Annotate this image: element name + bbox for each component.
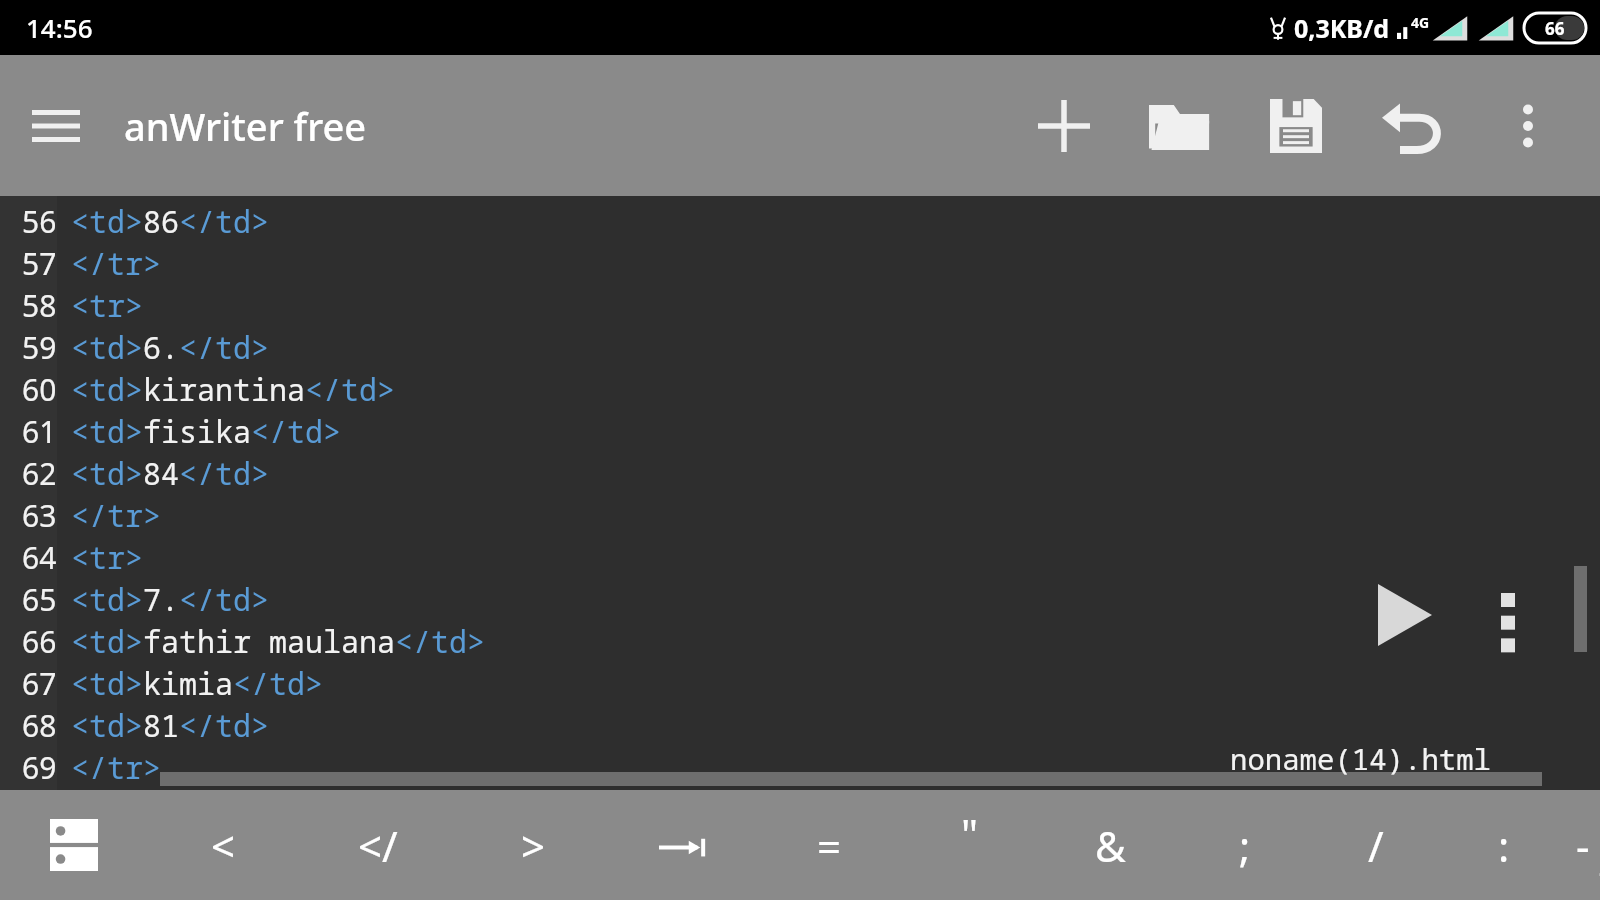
button[interactable]: Undo [1354, 55, 1470, 196]
staticText: 0,3KB/d [1294, 11, 1390, 45]
staticText: 56 [22, 201, 57, 242]
button[interactable]: Open file [1122, 55, 1238, 196]
staticText: 57 [22, 243, 57, 284]
button[interactable]: ; [1180, 790, 1310, 900]
staticText: <td>7.</td> [71, 579, 269, 620]
button[interactable]: Open navigation drawer [20, 90, 92, 162]
staticText: <td>86</td> [71, 201, 269, 242]
staticText: 59 [22, 327, 57, 368]
staticText: 64 [22, 537, 57, 578]
staticText: > [521, 817, 546, 874]
staticText: 58 [22, 285, 57, 326]
staticText: </tr> [71, 495, 161, 536]
button[interactable]: < [148, 790, 298, 900]
staticText: noname(14).html [1230, 739, 1492, 778]
staticText: </tr> [71, 747, 161, 788]
staticText: <td>fathir maulana</td> [71, 621, 485, 662]
staticText: <tr> [71, 285, 143, 326]
staticText: </tr> [71, 243, 161, 284]
staticText: / [1368, 817, 1384, 874]
staticText: <td>kirantina</td> [71, 369, 395, 410]
staticText: & [1095, 817, 1126, 874]
button[interactable]: Save file [1238, 55, 1354, 196]
staticText: 60 [22, 369, 57, 410]
button[interactable]: = [758, 790, 900, 900]
staticText: " [961, 805, 979, 862]
staticText: 4G [1411, 13, 1430, 32]
staticText: <td>6.</td> [71, 327, 269, 368]
button[interactable]: Editor options [1478, 590, 1538, 650]
button[interactable]: Run preview [1370, 580, 1440, 650]
staticText: : [1498, 817, 1510, 874]
staticText: = [817, 817, 842, 874]
staticText: <td>kimia</td> [71, 663, 323, 704]
staticText: 63 [22, 495, 57, 536]
staticText: anWriter free [124, 100, 367, 152]
staticText: < [211, 817, 236, 874]
button[interactable]: Insert tab [608, 790, 758, 900]
staticText: 68 [22, 705, 57, 746]
button[interactable]: " [900, 790, 1040, 900]
button[interactable]: More options [1470, 55, 1586, 196]
button[interactable]: & [1040, 790, 1180, 900]
staticText: <tr> [71, 537, 143, 578]
button[interactable]: : [1442, 790, 1566, 900]
staticText: 67 [22, 663, 57, 704]
staticText: 62 [22, 453, 57, 494]
staticText: <td>fisika</td> [71, 411, 341, 452]
button[interactable]: - [1566, 790, 1600, 900]
staticText: 69 [22, 747, 57, 788]
button[interactable]: / [1310, 790, 1442, 900]
staticText: ; [1239, 817, 1251, 874]
staticText: 61 [22, 411, 57, 452]
staticText: - [1576, 817, 1590, 874]
button[interactable]: Add new file [1006, 55, 1122, 196]
staticText: 14:56 [26, 10, 93, 45]
staticText: 66 [1545, 17, 1565, 40]
staticText: </ [358, 817, 398, 874]
staticText: 65 [22, 579, 57, 620]
button[interactable]: Keyboard rows [0, 790, 148, 900]
staticText: <td>81</td> [71, 705, 269, 746]
staticText: <td>84</td> [71, 453, 269, 494]
staticText: 66 [22, 621, 57, 662]
button[interactable]: </ [298, 790, 458, 900]
button[interactable]: > [458, 790, 608, 900]
